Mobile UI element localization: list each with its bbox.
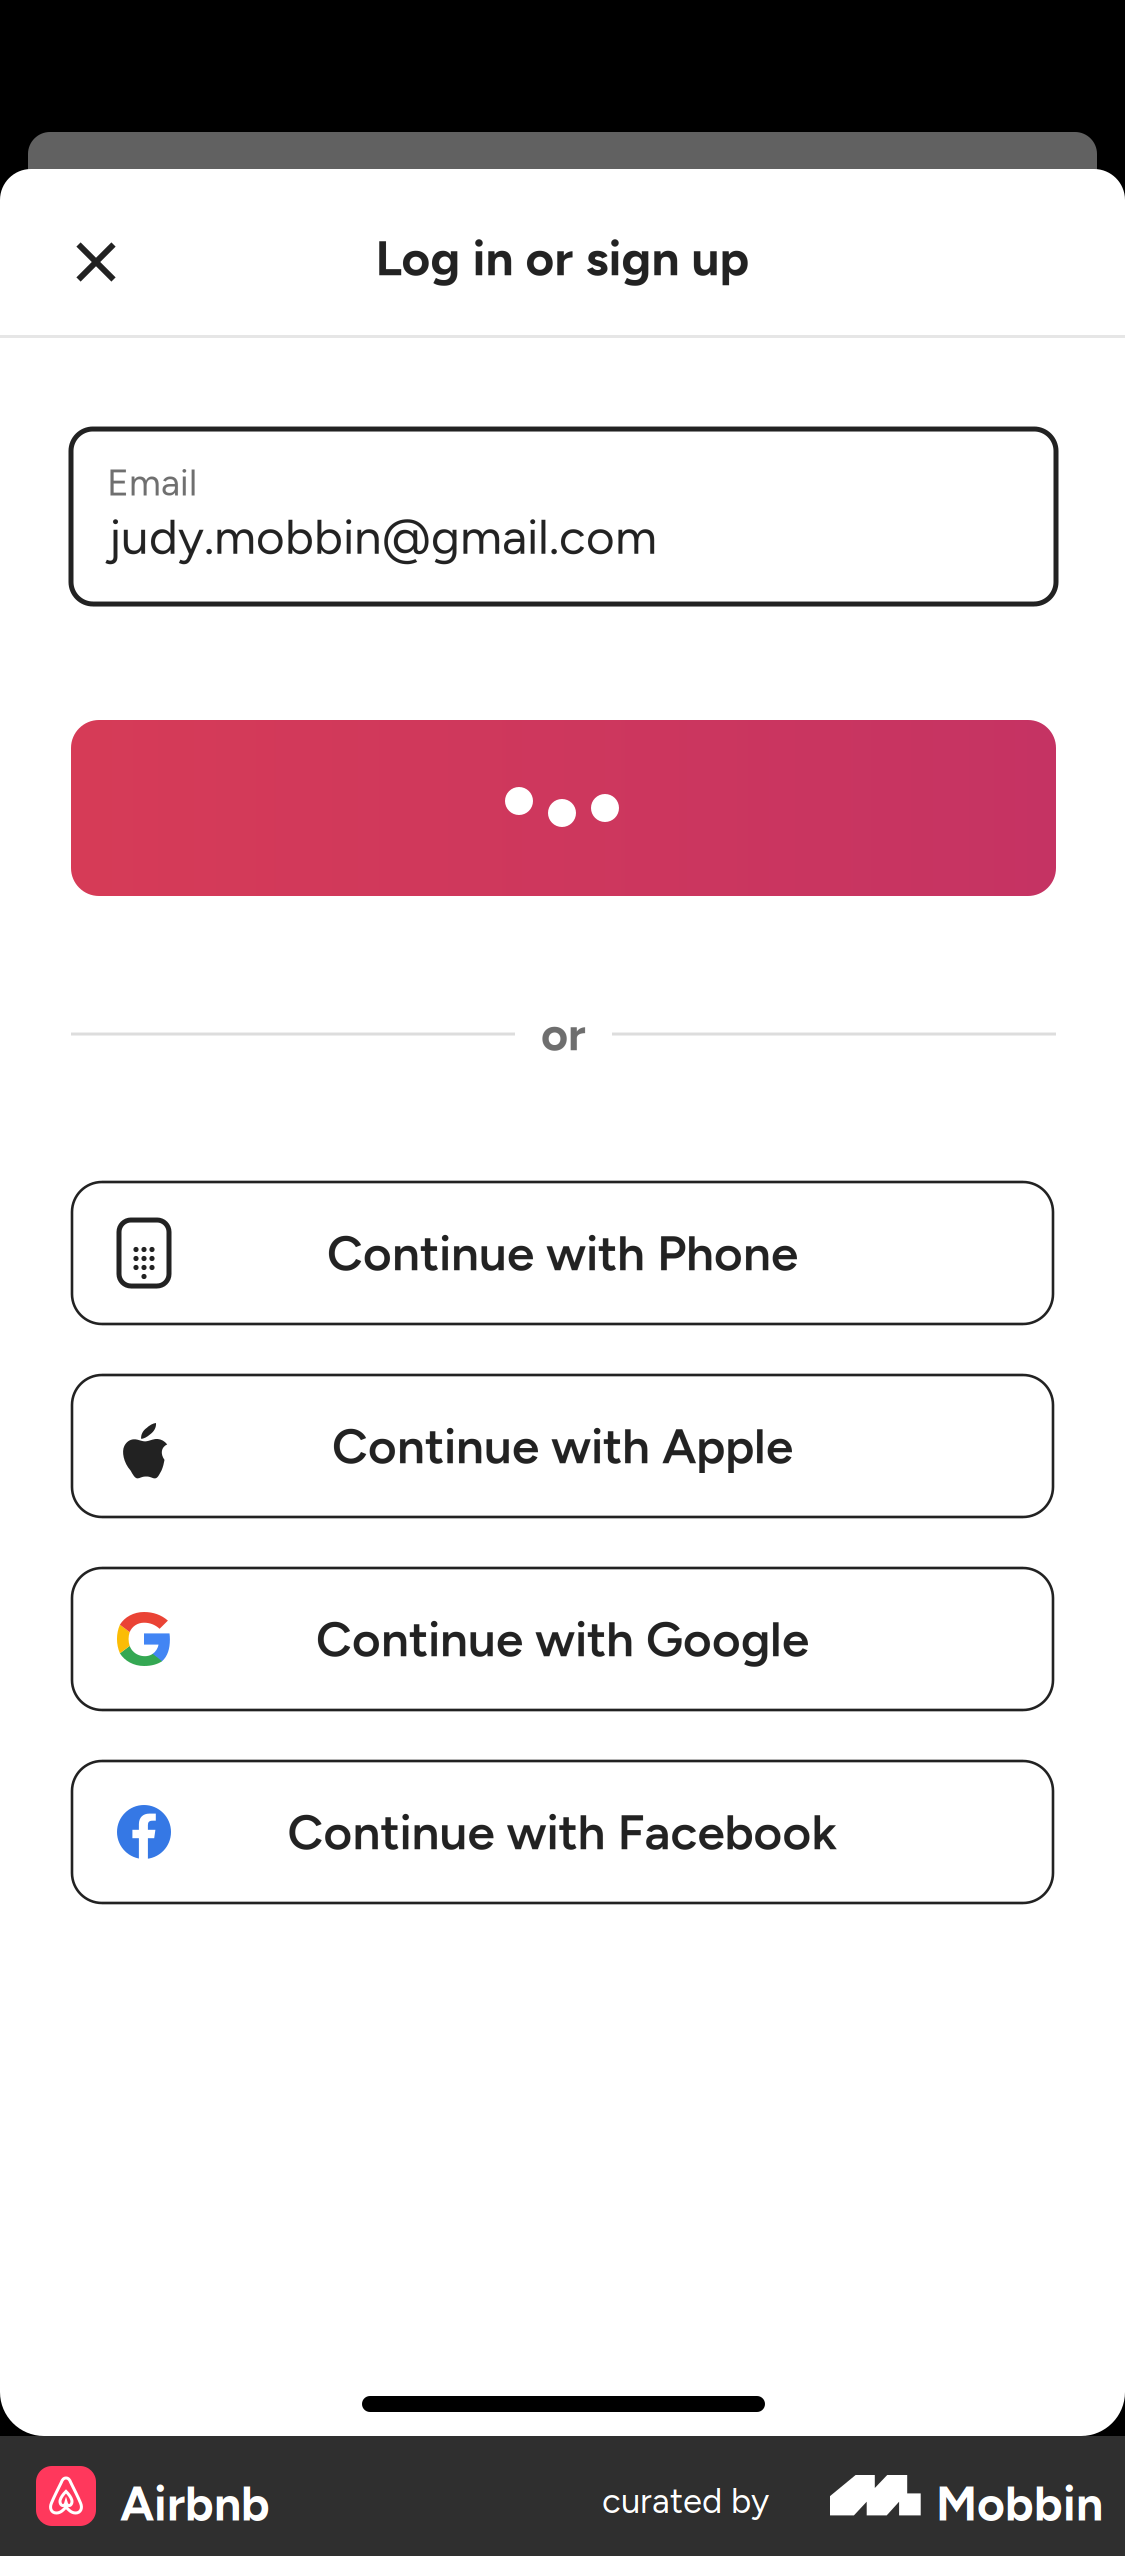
- button[interactable]: Close: [46, 212, 146, 312]
- staticText: Mobbin: [936, 2475, 1103, 2533]
- staticText: Continue with Apple: [332, 1416, 793, 1476]
- staticText: Continue with Facebook: [287, 1802, 837, 1862]
- staticText: or: [541, 1006, 586, 1062]
- staticText: Log in or sign up: [375, 228, 749, 288]
- button[interactable]: Continue: [71, 720, 1056, 896]
- button[interactable]: Continue with Facebook: [72, 1761, 1053, 1903]
- staticText: judy.mobbin@gmail.com: [108, 507, 657, 566]
- staticText: Continue with Google: [316, 1609, 809, 1669]
- staticText: Email: [107, 460, 197, 505]
- button[interactable]: Email, judy.mobbin@gmail.com: [71, 429, 1056, 604]
- staticText: Continue with Phone: [327, 1223, 798, 1283]
- button[interactable]: Continue with Apple: [72, 1375, 1053, 1517]
- button[interactable]: Continue with Google: [72, 1568, 1053, 1710]
- staticText: Airbnb: [120, 2475, 270, 2533]
- button[interactable]: Continue with Phone: [72, 1182, 1053, 1324]
- staticText: curated by: [602, 2480, 769, 2522]
